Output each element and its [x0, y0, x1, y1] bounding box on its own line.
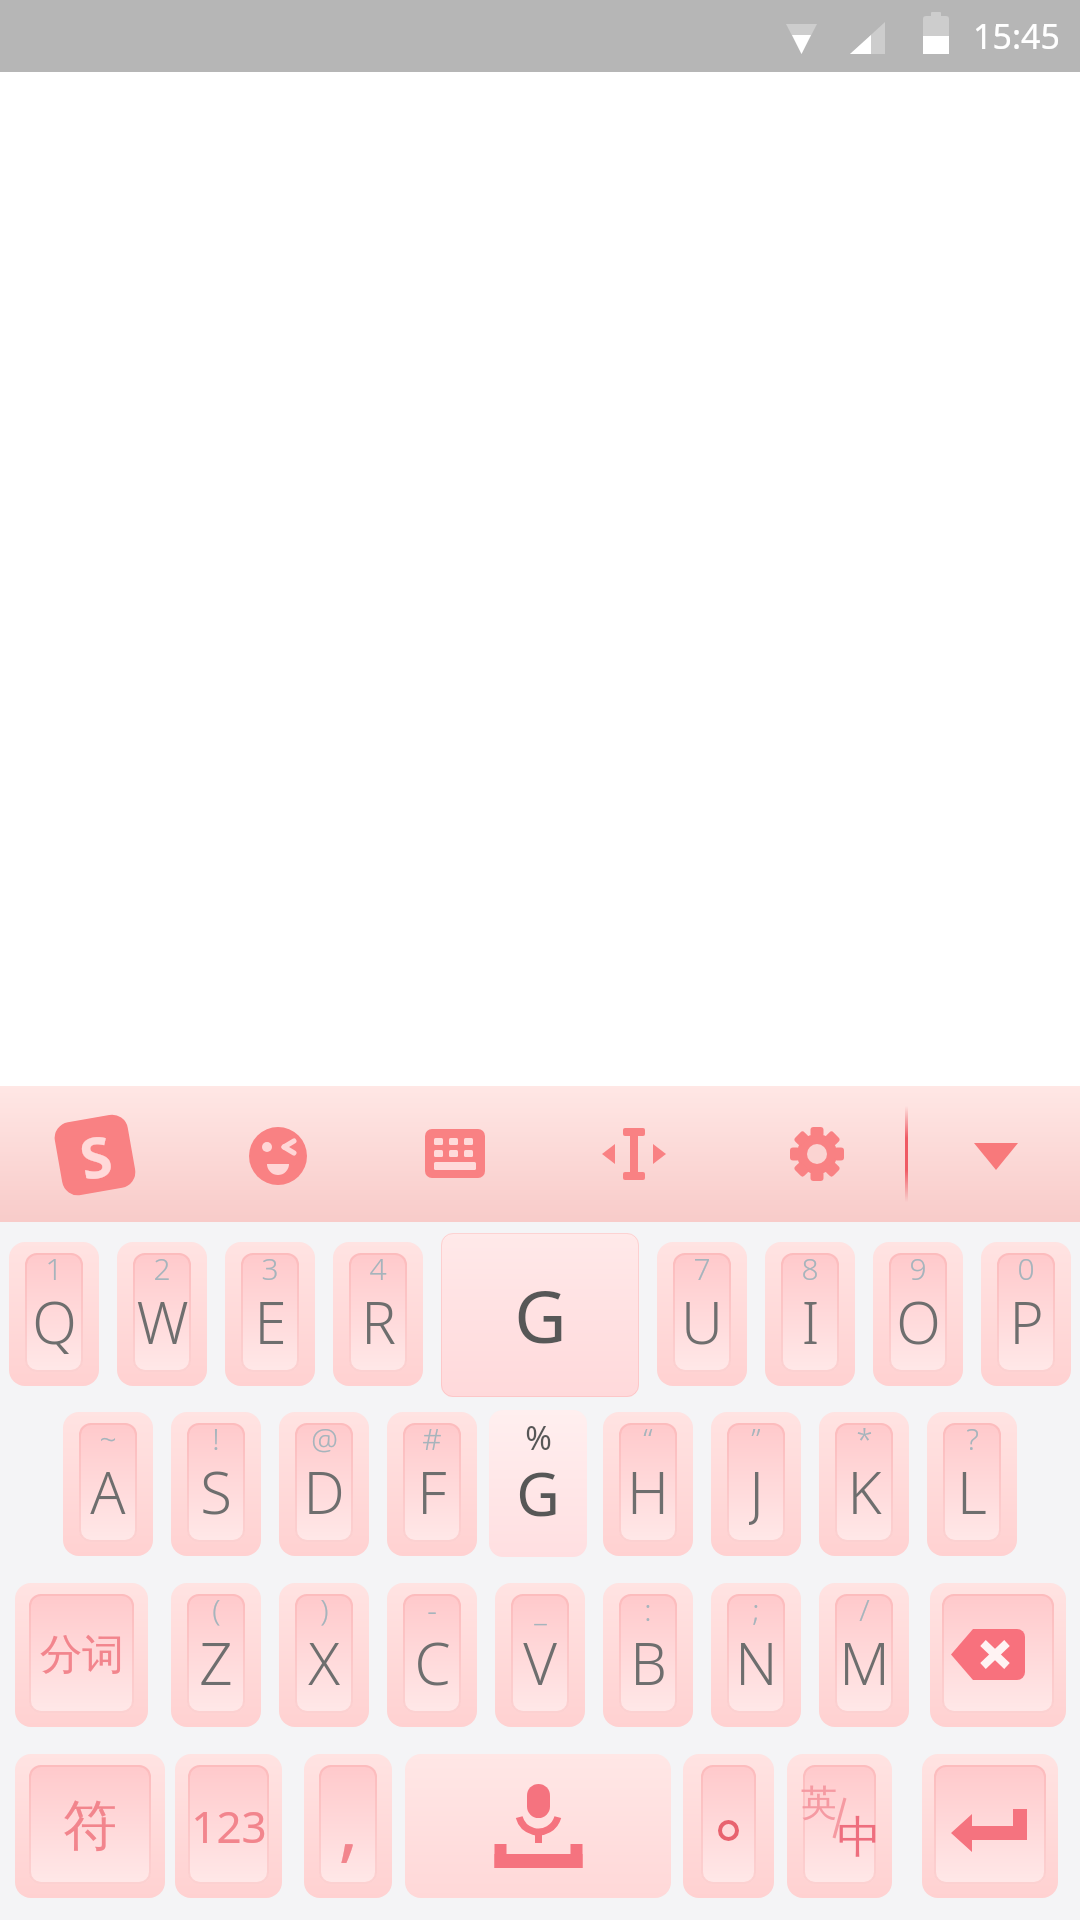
button[interactable] [922, 1754, 1058, 1898]
staticText: 9 [909, 1248, 927, 1286]
staticText: J [749, 1452, 764, 1526]
staticText: 分词 [40, 1629, 124, 1682]
staticText: S [200, 1452, 232, 1526]
staticText: G [516, 1452, 560, 1526]
staticText: V [523, 1623, 557, 1697]
button[interactable]: 9 [873, 1242, 963, 1386]
staticText: U [681, 1282, 723, 1356]
button[interactable]: ! [171, 1412, 261, 1556]
button[interactable]: 英 [787, 1754, 892, 1898]
staticText: S [74, 1116, 117, 1194]
staticText: ” [751, 1418, 761, 1456]
staticText: N [735, 1623, 778, 1697]
button[interactable] [966, 1136, 1026, 1180]
staticText: 2 [153, 1248, 171, 1286]
button[interactable]: 0 [981, 1242, 1071, 1386]
button[interactable]: 2 [117, 1242, 207, 1386]
button[interactable]: , [304, 1754, 392, 1898]
button[interactable] [425, 1129, 485, 1179]
button[interactable]: * [819, 1412, 909, 1556]
button[interactable] [683, 1754, 774, 1898]
staticText: 123 [191, 1796, 267, 1856]
staticText: W [136, 1282, 189, 1356]
button[interactable]: % [489, 1410, 587, 1557]
staticText: ! [212, 1418, 220, 1456]
button[interactable]: ) [279, 1583, 369, 1727]
staticText: # [422, 1418, 442, 1456]
button[interactable]: 8 [765, 1242, 855, 1386]
button[interactable] [405, 1754, 671, 1898]
staticText: 中 [837, 1810, 881, 1865]
staticText: O [896, 1282, 941, 1356]
staticText: ? [966, 1418, 979, 1456]
button[interactable]: ~ [63, 1412, 153, 1556]
button[interactable] [930, 1583, 1066, 1727]
staticText: “ [643, 1418, 653, 1456]
staticText: 符 [63, 1792, 117, 1860]
staticText: 15:45 [973, 13, 1060, 59]
staticText: I [801, 1282, 820, 1356]
staticText: - [427, 1589, 437, 1627]
button[interactable]: ( [171, 1583, 261, 1727]
button[interactable] [248, 1126, 308, 1186]
button[interactable]: 123 [175, 1754, 282, 1898]
button[interactable]: - [387, 1583, 477, 1727]
staticText: : [644, 1589, 652, 1627]
staticText: 4 [369, 1248, 387, 1286]
staticText: F [417, 1452, 447, 1526]
staticText: H [627, 1452, 669, 1526]
button[interactable]: @ [279, 1412, 369, 1556]
staticText: , [338, 1772, 359, 1872]
button[interactable]: 3 [225, 1242, 315, 1386]
button[interactable]: 分词 [15, 1583, 148, 1727]
staticText: @ [311, 1418, 338, 1456]
button[interactable]: S [52, 1112, 138, 1198]
staticText: K [847, 1452, 882, 1526]
staticText: 英 [801, 1780, 837, 1825]
staticText: Z [199, 1623, 233, 1697]
button[interactable]: ; [711, 1583, 801, 1727]
button[interactable]: ” [711, 1412, 801, 1556]
staticText: X [308, 1623, 340, 1697]
staticText: ; [752, 1589, 760, 1627]
staticText: D [303, 1452, 345, 1526]
staticText: B [630, 1623, 667, 1697]
button[interactable]: ? [927, 1412, 1017, 1556]
button[interactable]: / [819, 1583, 909, 1727]
button[interactable]: _ [495, 1583, 585, 1727]
staticText: R [361, 1282, 396, 1356]
button[interactable]: 4 [333, 1242, 423, 1386]
button[interactable]: 7 [657, 1242, 747, 1386]
staticText: 3 [261, 1248, 279, 1286]
staticText: E [254, 1282, 287, 1356]
button[interactable]: “ [603, 1412, 693, 1556]
staticText: M [839, 1623, 890, 1697]
staticText: ~ [99, 1418, 117, 1456]
staticText: 8 [801, 1248, 819, 1286]
staticText: C [414, 1623, 451, 1697]
button[interactable]: : [603, 1583, 693, 1727]
button[interactable] [602, 1128, 666, 1182]
staticText: G [514, 1266, 567, 1364]
staticText: % [525, 1416, 552, 1454]
staticText: _ [534, 1589, 547, 1627]
button[interactable]: # [387, 1412, 477, 1556]
button[interactable]: 1 [9, 1242, 99, 1386]
staticText: P [1009, 1282, 1044, 1356]
button[interactable] [789, 1126, 845, 1182]
button[interactable]: 符 [15, 1754, 165, 1898]
staticText: / [859, 1589, 870, 1627]
staticText: A [90, 1452, 126, 1526]
staticText: * [856, 1418, 873, 1456]
staticText: Q [32, 1282, 77, 1356]
staticText: L [957, 1452, 987, 1526]
staticText: 0 [1017, 1248, 1035, 1286]
staticText: ) [320, 1589, 329, 1627]
staticText: ( [212, 1589, 221, 1627]
staticText: 1 [45, 1248, 63, 1286]
staticText: 7 [693, 1248, 711, 1286]
